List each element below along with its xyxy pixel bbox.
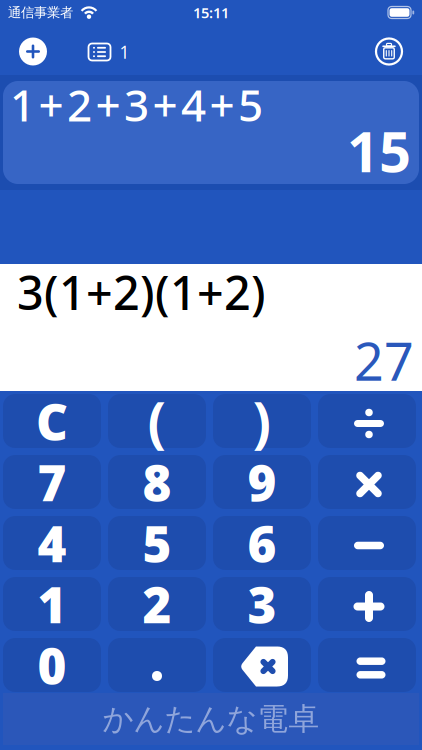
staticText: 3: [247, 571, 276, 637]
staticText: C: [36, 388, 68, 454]
staticText: 6: [247, 510, 276, 576]
staticText: 5: [142, 510, 171, 576]
staticText: 1+2+3+4+5: [10, 75, 263, 134]
staticText: 15:11: [193, 3, 229, 22]
staticText: 9: [247, 449, 276, 515]
button[interactable]: かんたんな電卓: [3, 693, 419, 745]
staticText: (: [147, 385, 166, 457]
button[interactable]: [318, 394, 416, 448]
button[interactable]: [213, 638, 311, 692]
staticText: 4: [37, 510, 66, 576]
staticText: 27: [354, 326, 414, 395]
button[interactable]: [375, 37, 403, 65]
staticText: 7: [37, 449, 66, 515]
staticText: ): [252, 385, 271, 457]
button[interactable]: [318, 516, 416, 570]
button[interactable]: [318, 455, 416, 509]
button[interactable]: 1: [3, 577, 101, 631]
button[interactable]: 2: [108, 577, 206, 631]
button[interactable]: 1: [86, 37, 132, 67]
button[interactable]: [318, 638, 416, 692]
staticText: 1: [119, 40, 129, 63]
staticText: 2: [142, 571, 171, 637]
staticText: 0: [37, 632, 66, 698]
button[interactable]: 3: [213, 577, 311, 631]
button[interactable]: 7: [3, 455, 101, 509]
button[interactable]: 0: [3, 638, 101, 692]
staticText: 3(1+2)(1+2): [17, 261, 266, 323]
button[interactable]: 4: [3, 516, 101, 570]
staticText: 1: [37, 571, 66, 637]
button[interactable]: 1+2+3+4+5: [3, 81, 419, 184]
staticText: かんたんな電卓: [102, 700, 319, 738]
staticText: 15: [347, 113, 411, 188]
button[interactable]: [108, 638, 206, 692]
staticText: 8: [142, 449, 171, 515]
button[interactable]: 9: [213, 455, 311, 509]
button[interactable]: 3(1+2)(1+2): [0, 264, 422, 391]
button[interactable]: 8: [108, 455, 206, 509]
staticText: 通信事業者: [8, 4, 73, 21]
button[interactable]: 5: [108, 516, 206, 570]
button[interactable]: [19, 37, 47, 65]
button[interactable]: ): [213, 394, 311, 448]
button[interactable]: (: [108, 394, 206, 448]
button[interactable]: 6: [213, 516, 311, 570]
button[interactable]: C: [3, 394, 101, 448]
button[interactable]: [318, 577, 416, 631]
